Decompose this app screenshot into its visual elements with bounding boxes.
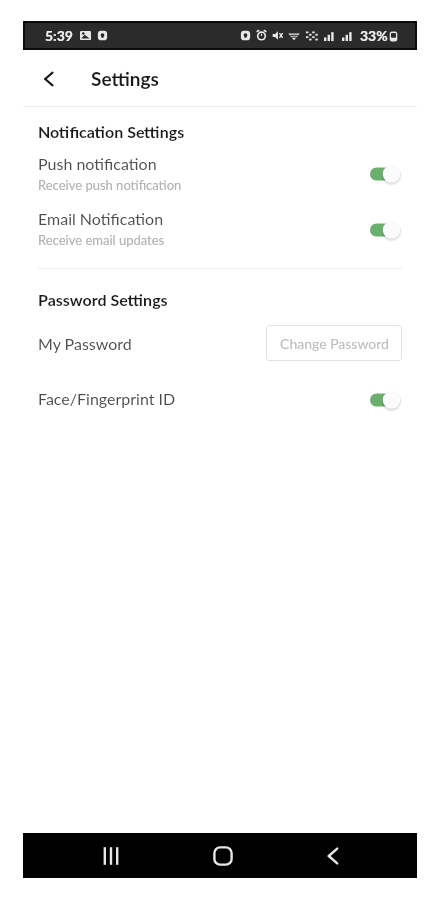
staticText: Change Password <box>280 335 389 352</box>
staticText: Receive email updates <box>38 232 165 248</box>
button[interactable]: Toggle <box>370 388 402 412</box>
staticText: My Password <box>38 334 132 353</box>
button[interactable]: Toggle <box>370 162 402 186</box>
staticText: Notification Settings <box>38 122 185 141</box>
button[interactable]: Home <box>199 832 247 880</box>
staticText: Email Notification <box>38 209 164 228</box>
button[interactable]: Back <box>30 60 68 98</box>
staticText: 33% <box>360 27 388 44</box>
button[interactable]: Back <box>309 832 357 880</box>
button[interactable]: Push notification <box>38 154 402 194</box>
staticText: Push notification <box>38 154 157 173</box>
staticText: 5:39 <box>45 27 73 44</box>
staticText: Receive push notification <box>38 177 182 193</box>
button[interactable]: Change Password <box>266 325 402 361</box>
button[interactable]: Toggle <box>370 218 402 242</box>
button[interactable]: Email Notification <box>38 209 402 249</box>
staticText: Face/Fingerprint ID <box>38 389 176 408</box>
staticText: Settings <box>91 67 159 90</box>
button[interactable]: Recent apps <box>87 832 135 880</box>
button[interactable]: Face/Fingerprint ID <box>38 380 402 416</box>
staticText: Password Settings <box>38 290 168 309</box>
